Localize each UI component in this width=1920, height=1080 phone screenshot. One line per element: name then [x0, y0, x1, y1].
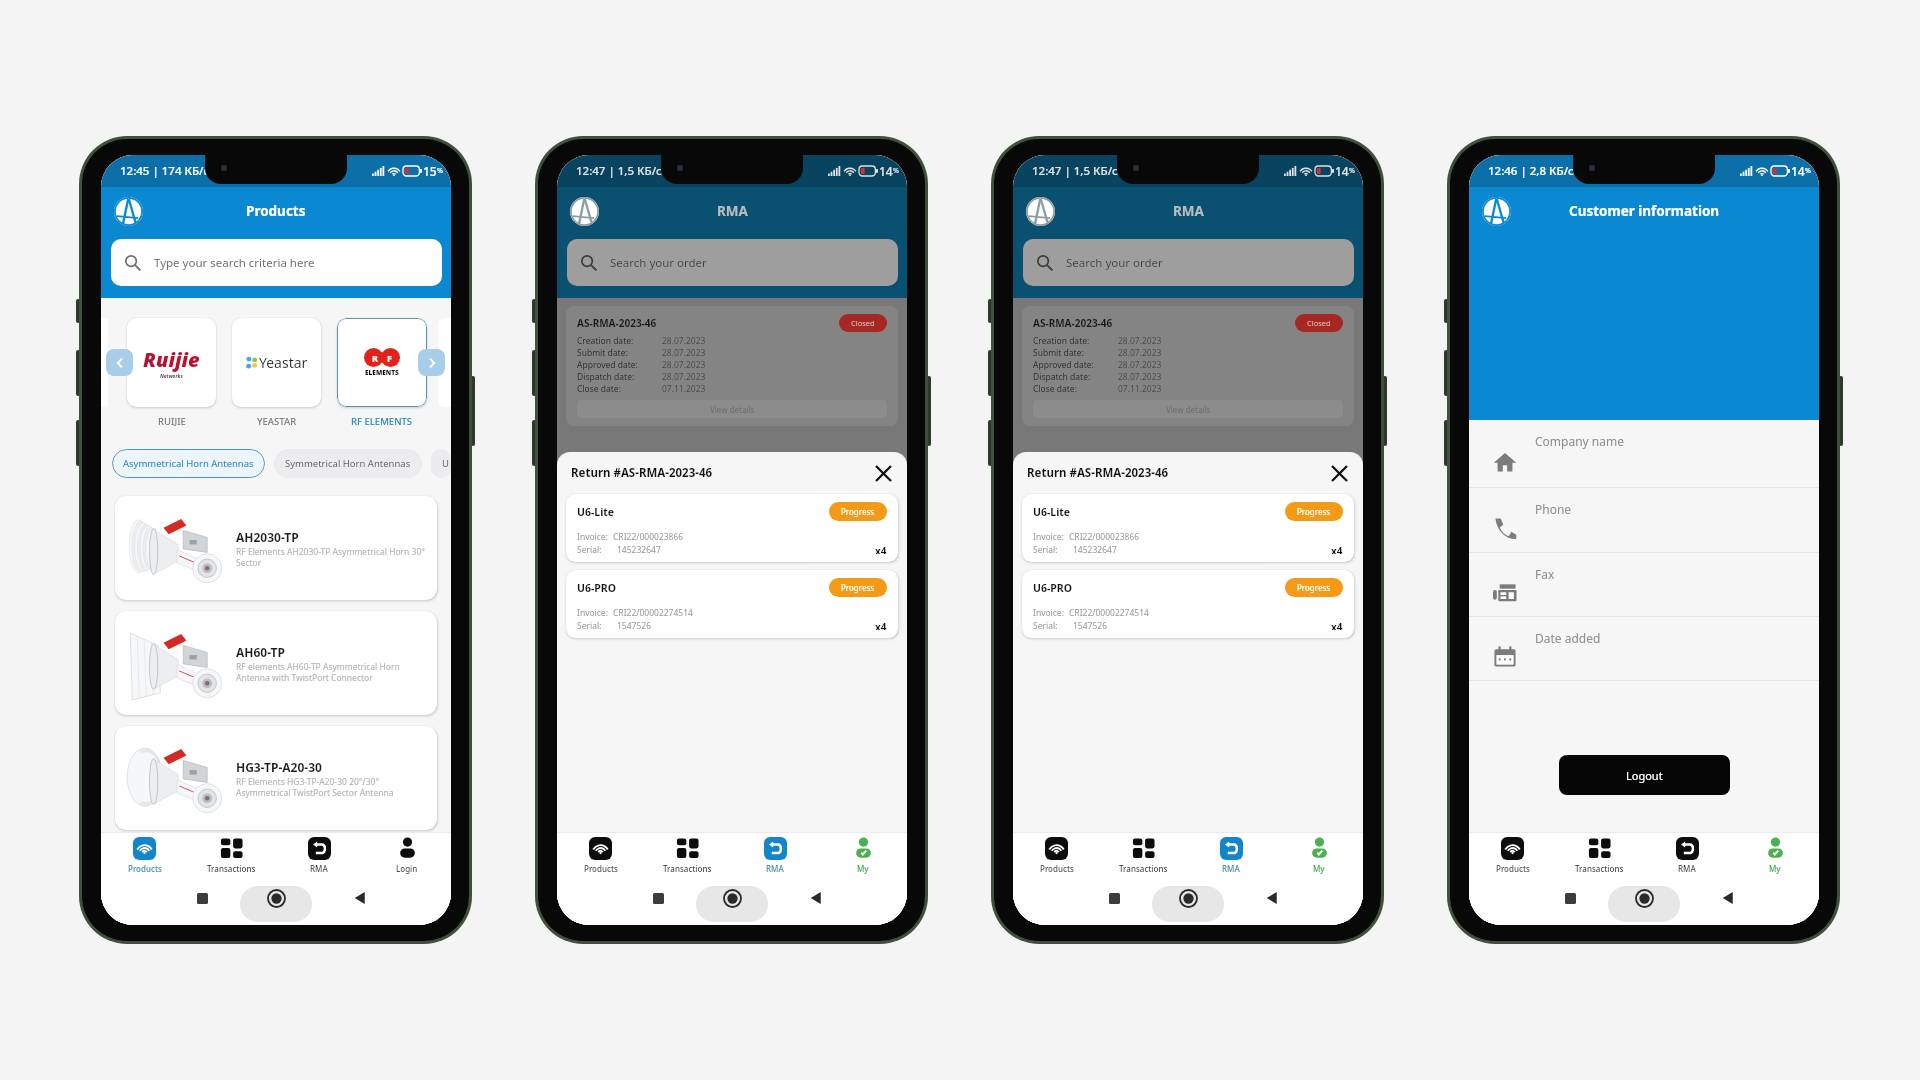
staticText: Dispatch date: — [1033, 371, 1091, 383]
staticText: 28.07.2023 — [662, 335, 706, 347]
button[interactable]: Back — [353, 891, 367, 905]
button[interactable]: Next brand — [418, 349, 445, 376]
button[interactable]: Recents — [653, 893, 664, 904]
button[interactable]: Transactions — [188, 833, 275, 877]
staticText: RF elements AH60-TP Asymmetrical Horn An… — [236, 661, 429, 683]
staticText: RMA — [1173, 202, 1204, 220]
button[interactable]: Home — [1179, 889, 1198, 908]
button[interactable]: App logo — [1026, 197, 1055, 226]
staticText: 145232647 — [617, 544, 661, 554]
staticText: Transactions — [207, 863, 256, 874]
button[interactable]: U6-Lite — [566, 494, 898, 562]
button[interactable]: U6-PRO — [1022, 570, 1354, 638]
staticText: Close date: — [577, 383, 621, 395]
button[interactable]: Recents — [1109, 893, 1120, 904]
staticText: Return #AS-RMA-2023-46 — [1027, 465, 1169, 481]
button[interactable]: Transactions — [1556, 833, 1643, 877]
staticText: Search your order — [1066, 255, 1163, 271]
button[interactable]: U6-Lite — [1022, 494, 1354, 562]
button[interactable]: Transactions — [644, 833, 731, 877]
button[interactable]: My — [1275, 833, 1363, 877]
staticText: RMA — [717, 202, 748, 220]
staticText: 28.07.2023 — [1118, 359, 1162, 371]
staticText: Date added — [1535, 630, 1601, 646]
button[interactable]: RMA — [275, 833, 363, 877]
staticText: Fax — [1535, 566, 1555, 582]
button[interactable]: Logout — [1559, 755, 1730, 795]
staticText: ELEMENTS — [365, 368, 399, 377]
button[interactable]: Date added — [1469, 617, 1819, 680]
button[interactable]: Login — [363, 833, 451, 877]
staticText: Creation date: — [1033, 335, 1090, 347]
button[interactable]: App logo — [1482, 197, 1511, 226]
staticText: RMA — [1678, 863, 1696, 874]
staticText: RF Elements AH2030-TP Asymmetrical Horn … — [236, 546, 429, 568]
button[interactable]: Back — [1265, 891, 1279, 905]
button[interactable]: RMA — [1187, 833, 1275, 877]
staticText: AS-RMA-2023-46 — [1033, 316, 1113, 330]
staticText: RF ELEMENTS — [351, 415, 413, 428]
button[interactable]: RMA — [1643, 833, 1731, 877]
staticText: 28.07.2023 — [1118, 335, 1162, 347]
button[interactable]: R — [337, 318, 427, 407]
button[interactable]: Back — [1721, 891, 1735, 905]
button[interactable]: Products — [101, 833, 188, 877]
button[interactable]: Fax — [1469, 553, 1819, 616]
staticText: 14 — [1335, 163, 1349, 179]
staticText: Progress — [1297, 582, 1331, 593]
button[interactable]: Asymmetrical Horn Antennas — [112, 449, 265, 478]
staticText: 14 — [1791, 163, 1805, 179]
button[interactable]: Transactions — [1100, 833, 1187, 877]
button[interactable]: Products — [557, 833, 644, 877]
button[interactable]: Close — [1325, 459, 1353, 487]
staticText: Search your order — [610, 255, 707, 271]
button[interactable]: Recents — [1565, 893, 1576, 904]
button[interactable]: Symmetrical Horn Antennas — [274, 449, 422, 478]
staticText: Phone — [1535, 501, 1572, 517]
button[interactable]: RMA — [731, 833, 819, 877]
button[interactable]: My — [1731, 833, 1819, 877]
button[interactable]: Type your search criteria here — [111, 239, 442, 286]
staticText: % — [893, 166, 899, 176]
staticText: 07.11.2023 — [662, 383, 706, 395]
staticText: 07.11.2023 — [1118, 383, 1162, 395]
button[interactable]: AH2030-TP — [115, 496, 437, 600]
staticText: U6-Lite — [577, 505, 615, 519]
staticText: My — [1769, 863, 1781, 874]
staticText: RMA — [1222, 863, 1240, 874]
button[interactable]: Back — [809, 891, 823, 905]
button[interactable]: Phone — [1469, 488, 1819, 552]
button[interactable]: Home — [723, 889, 742, 908]
button[interactable]: Recents — [197, 893, 208, 904]
button[interactable]: AH60-TP — [115, 611, 437, 715]
button[interactable]: Search your order — [567, 239, 898, 286]
button[interactable]: Previous brand — [106, 349, 133, 376]
button[interactable]: Company name — [1469, 420, 1819, 487]
button[interactable]: Products — [1013, 833, 1100, 877]
button[interactable]: Yeastar — [232, 318, 321, 407]
button[interactable]: My — [819, 833, 907, 877]
button[interactable]: Close — [869, 459, 897, 487]
staticText: HG3-TP-A20-30 — [236, 759, 322, 775]
staticText: YEASTAR — [257, 415, 297, 428]
staticText: % — [1349, 166, 1355, 176]
staticText: CRI22/00002274514 — [1069, 607, 1149, 619]
button[interactable]: Home — [267, 889, 286, 908]
staticText: Company name — [1535, 433, 1624, 449]
button[interactable]: HG3-TP-A20-30 — [115, 726, 437, 830]
button[interactable]: App logo — [114, 197, 143, 226]
button[interactable]: Ruijie — [127, 318, 216, 407]
button[interactable]: Products — [1469, 833, 1556, 877]
button[interactable]: View details — [1033, 400, 1343, 418]
button[interactable]: U6-PRO — [566, 570, 898, 638]
staticText: Submit date: — [1033, 347, 1084, 359]
staticText: 1547526 — [1073, 620, 1108, 630]
staticText: Symmetrical Horn Antennas — [285, 457, 411, 470]
staticText: Approved date: — [1033, 359, 1094, 371]
button[interactable]: Search your order — [1023, 239, 1354, 286]
button[interactable]: App logo — [570, 197, 599, 226]
button[interactable]: View details — [577, 400, 887, 418]
staticText: Serial: — [577, 544, 602, 554]
button[interactable]: U — [431, 449, 451, 478]
button[interactable]: Home — [1635, 889, 1654, 908]
